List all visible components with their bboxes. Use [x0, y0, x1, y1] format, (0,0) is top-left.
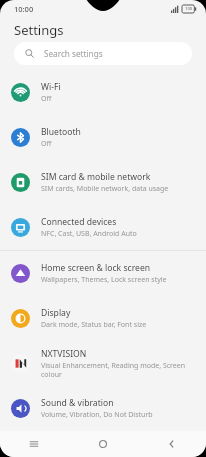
staticText: Connected devices [41, 216, 117, 228]
button[interactable]: SIM card & mobile network [0, 160, 206, 205]
staticText: Visual Enhancement, Reading mode, Screen… [41, 361, 194, 379]
button[interactable]: Connected devices [0, 205, 206, 250]
staticText: Home screen & lock screen [41, 262, 151, 274]
staticText: NFC, Cast, USB, Android Auto [41, 229, 137, 239]
button[interactable]: NXTVISION [0, 341, 206, 386]
staticText: Display [41, 307, 71, 319]
button[interactable]: Home screen & lock screen [0, 251, 206, 296]
staticText: Wallpapers, Themes, Lock screen style [41, 275, 167, 285]
staticText: Wi-Fi [41, 81, 61, 93]
button[interactable]: Back [137, 431, 206, 457]
staticText: 100 [185, 6, 193, 12]
button[interactable]: Recent apps [0, 431, 68, 457]
staticText: NXTVISION [41, 348, 87, 360]
staticText: SIM card & mobile network [41, 171, 151, 183]
staticText: Volume, Vibration, Do Not Disturb [41, 410, 153, 420]
button[interactable]: Home [68, 431, 137, 457]
staticText: Settings [14, 21, 64, 39]
staticText: Off [41, 94, 52, 104]
staticText: Search settings [44, 48, 103, 59]
button[interactable]: Wi-Fi [0, 70, 206, 115]
button[interactable]: Search settings [14, 42, 192, 65]
button[interactable]: Bluetooth [0, 115, 206, 160]
staticText: SIM cards, Mobile network, data usage [41, 184, 169, 194]
staticText: Sound & vibration [41, 397, 114, 409]
button[interactable]: Display [0, 296, 206, 341]
staticText: 10:00 [14, 4, 34, 14]
staticText: Dark mode, Status bar, Font size [41, 320, 147, 330]
button[interactable]: Sound & vibration [0, 386, 206, 431]
staticText: Bluetooth [41, 126, 81, 138]
staticText: Off [41, 139, 52, 149]
